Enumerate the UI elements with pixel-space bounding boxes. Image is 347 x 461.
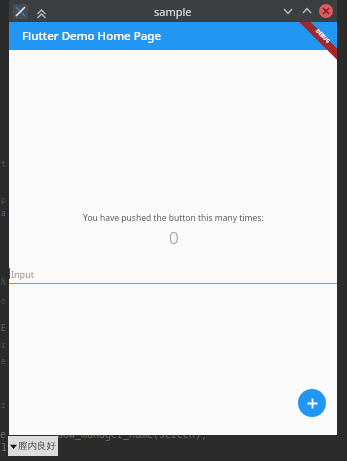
staticText: e [1,355,6,366]
button[interactable]: Increment [298,389,326,417]
button[interactable]: 膣内良好 [8,436,58,456]
button[interactable]: App icon [13,4,28,19]
staticText: sample [154,4,192,19]
staticText: l [1,440,7,454]
staticText: o [1,295,6,306]
button[interactable]: Minimize [281,4,295,18]
staticText: DEBUG [314,28,332,45]
staticText: 膣内良好 [18,440,56,452]
staticText: E [1,322,6,333]
staticText: r [1,399,6,410]
staticText: e [0,427,6,441]
staticText: N [1,276,6,287]
button[interactable]: Maximize [300,4,314,18]
staticText: a [1,207,6,218]
staticText: 0 [169,226,179,249]
staticText: Flutter Demo Home Page [22,28,161,44]
staticText: dow_manager_name(screen); [57,427,207,441]
button[interactable]: Collapse [34,4,49,19]
staticText: r [1,339,6,350]
staticText: Input [11,268,34,280]
staticText: t [1,158,6,169]
staticText: p [1,194,6,205]
button[interactable]: Close [319,4,333,18]
staticText: You have pushed the button this many tim… [83,212,264,224]
